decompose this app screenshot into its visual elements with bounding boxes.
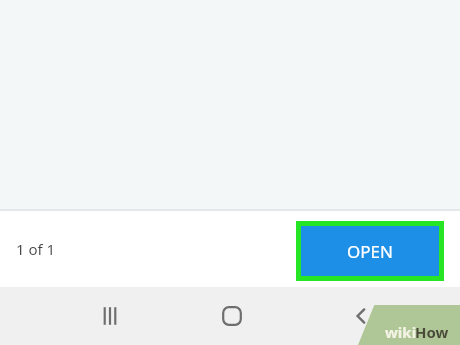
button[interactable]: Back (330, 287, 394, 345)
staticText: How (415, 322, 449, 342)
staticText: 1 of 1 (16, 239, 56, 259)
button[interactable]: Recent apps (78, 287, 142, 345)
button[interactable]: OPEN (301, 226, 439, 276)
staticText: wiki (385, 322, 417, 342)
button[interactable]: Home (200, 287, 264, 345)
staticText: OPEN (347, 240, 393, 263)
